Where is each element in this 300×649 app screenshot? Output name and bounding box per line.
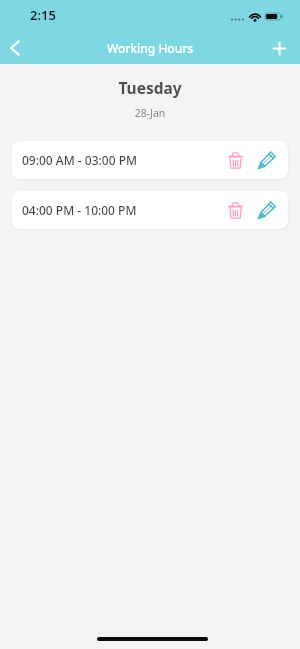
- button[interactable]: Delete: [223, 141, 247, 179]
- button[interactable]: Add: [262, 31, 297, 66]
- staticText: 28-Jan: [0, 106, 300, 120]
- staticText: Tuesday: [0, 77, 300, 98]
- button[interactable]: 09:00 AM - 03:00 PM: [12, 141, 288, 179]
- staticText: Working Hours: [0, 40, 300, 56]
- staticText: 04:00 PM - 10:00 PM: [22, 202, 137, 218]
- staticText: 2:15: [30, 6, 56, 24]
- button[interactable]: Back: [0, 31, 29, 65]
- button[interactable]: 04:00 PM - 10:00 PM: [12, 191, 288, 229]
- staticText: 09:00 AM - 03:00 PM: [22, 152, 137, 168]
- button[interactable]: Edit: [255, 141, 279, 179]
- button[interactable]: Edit: [255, 191, 279, 229]
- button[interactable]: Delete: [223, 191, 247, 229]
